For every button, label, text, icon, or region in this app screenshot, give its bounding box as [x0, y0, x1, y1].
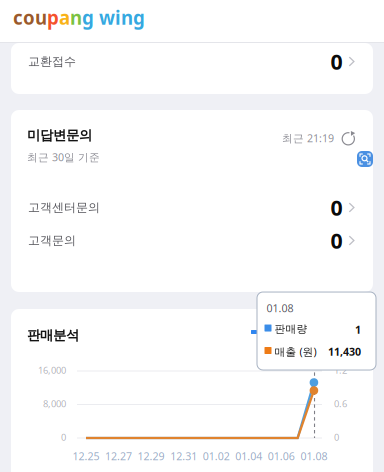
staticText: 01.04 [235, 449, 262, 463]
staticText: 12.27 [105, 449, 132, 463]
staticText: p [47, 5, 59, 30]
staticText: 01.08 [300, 449, 327, 463]
staticText: g [82, 5, 94, 30]
staticText: 판매분석 [27, 327, 79, 343]
staticText: 미답변문의 [27, 127, 92, 143]
staticText: a [59, 5, 70, 30]
staticText: 판매량 [274, 322, 307, 336]
staticText: 매출 (원) [274, 344, 316, 359]
staticText: 최근 21:19 [282, 131, 334, 145]
staticText: n [70, 5, 82, 30]
staticText: 고객센터문의 [28, 200, 100, 215]
staticText: 01.08 [266, 301, 293, 315]
button[interactable]: 고객문의 [11, 224, 373, 257]
staticText: 1 [355, 322, 361, 337]
staticText: 최근 30일 기준 [27, 150, 100, 164]
staticText: 8,000 [43, 397, 66, 410]
staticText: 11,430 [328, 344, 361, 359]
button[interactable]: Search [357, 151, 373, 167]
staticText: 0 [330, 193, 342, 222]
staticText: 12.31 [170, 449, 197, 463]
staticText: 고객문의 [28, 233, 76, 248]
staticText: 0 [330, 226, 342, 255]
staticText: 12.29 [138, 449, 165, 463]
staticText: wing [94, 5, 145, 30]
staticText: 0 [330, 47, 342, 76]
button[interactable]: 교환접수 [11, 45, 373, 78]
staticText: 교환접수 [28, 54, 76, 69]
staticText: cou [13, 5, 47, 30]
staticText: 01.02 [203, 449, 230, 463]
staticText: 0.6 [334, 397, 347, 410]
staticText: 16,000 [38, 364, 66, 376]
button[interactable]: 고객센터문의 [11, 191, 373, 224]
staticText: 01.06 [268, 449, 295, 463]
staticText: 0 [61, 431, 66, 443]
staticText: 0 [334, 431, 339, 443]
staticText: 12.25 [72, 449, 99, 463]
staticText: 1.2 [334, 364, 347, 376]
